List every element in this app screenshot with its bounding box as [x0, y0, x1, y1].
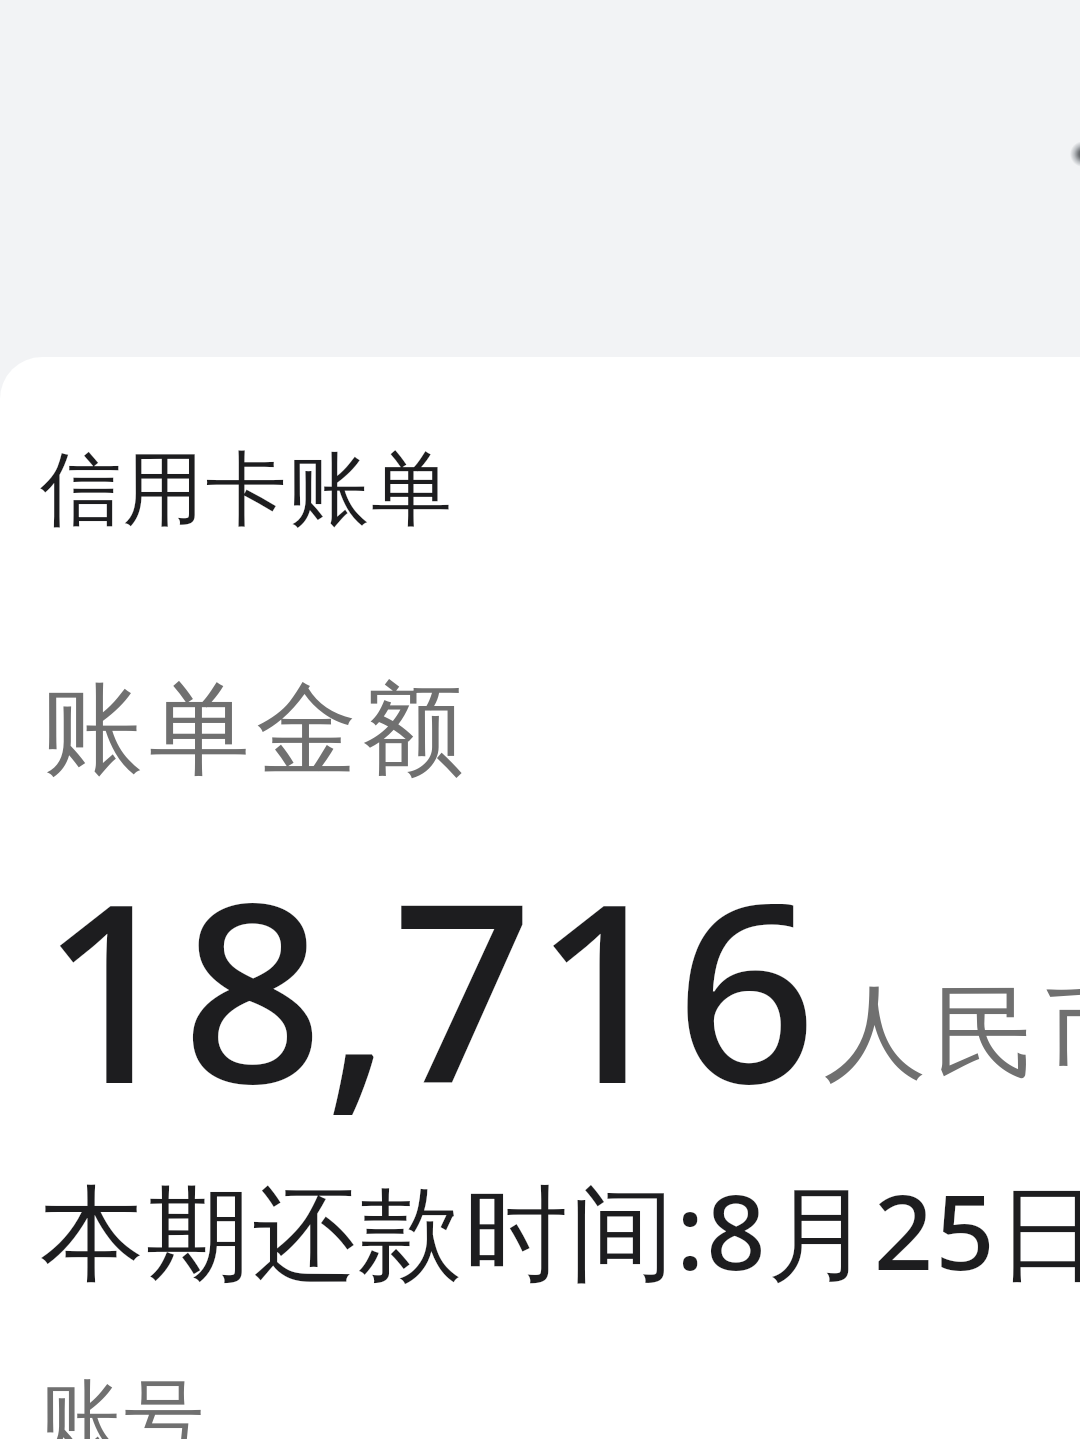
- button[interactable]: 信用卡账单: [0, 357, 1080, 1439]
- button[interactable]: More options: [1040, 110, 1080, 198]
- staticText: 账号: [41, 1367, 205, 1439]
- staticText: 本期还款时间:8月25日: [40, 1159, 1080, 1301]
- staticText: 18,716: [40, 818, 817, 1156]
- button[interactable]: 信用卡账单: [0, 357, 414, 459]
- staticText: 人民币: [820, 969, 1080, 1099]
- staticText: 账单金额: [39, 667, 467, 794]
